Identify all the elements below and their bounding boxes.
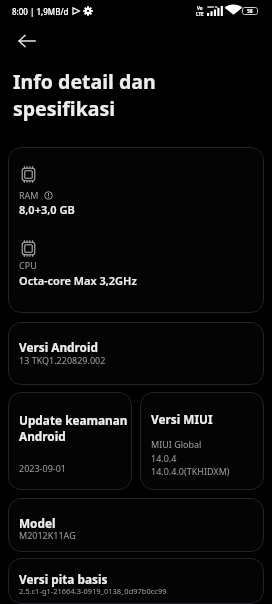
- button[interactable]: Versi pita basis: [8, 558, 264, 604]
- staticText: Info detail dan spesifikasi: [13, 68, 202, 122]
- staticText: Vo: [197, 5, 203, 11]
- staticText: Octa-core Max 3,2GHz: [19, 273, 137, 288]
- button[interactable]: RAM: [8, 147, 264, 313]
- staticText: RAM: [19, 189, 39, 201]
- button[interactable]: Model: [8, 498, 264, 552]
- staticText: Versi MIUI: [151, 411, 213, 427]
- staticText: 2.5.c1-g1-21664.3-0919_0138_0d97b0cc99: [19, 586, 167, 596]
- button[interactable]: Back: [11, 25, 43, 57]
- button[interactable]: Update keamanan Android: [8, 392, 132, 490]
- staticText: 8:00 | 1,9MB/d: [12, 6, 69, 17]
- button[interactable]: Versi Android: [8, 322, 264, 385]
- staticText: Model: [19, 515, 56, 531]
- staticText: M2012K11AG: [19, 529, 76, 541]
- staticText: 13 TKQ1.220829.002: [19, 354, 106, 366]
- staticText: MIUI Global 14.0.4 14.0.4.0(TKHIDXM): [151, 438, 230, 477]
- staticText: CPU: [19, 259, 37, 271]
- staticText: 8,0+3,0 GB: [19, 202, 75, 217]
- staticText: LTE: [196, 11, 204, 17]
- staticText: 2023-09-01: [19, 462, 66, 474]
- staticText: Versi Android: [19, 339, 98, 355]
- staticText: Update keamanan Android: [19, 412, 128, 444]
- button[interactable]: Versi MIUI: [140, 392, 264, 490]
- staticText: Versi pita basis: [19, 571, 108, 587]
- staticText: 58: [247, 8, 253, 15]
